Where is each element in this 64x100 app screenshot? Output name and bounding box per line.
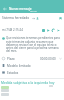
staticText: Plazo xyxy=(7,57,15,61)
staticText: 00:00-00:00 xyxy=(40,57,56,61)
button[interactable]: Plazo xyxy=(0,55,64,62)
staticText: Nuevo mensaje xyxy=(9,7,32,11)
button[interactable]: Label xyxy=(58,16,63,21)
staticText: Que revisiones tenemos pendientes para e… xyxy=(6,36,61,52)
button[interactable]: Modelo limitado xyxy=(0,62,64,69)
button[interactable]: Archive xyxy=(41,28,46,33)
button[interactable]: Call xyxy=(51,28,56,33)
staticText: Medida subjetiva a la izquierda hoy xyxy=(1,81,55,85)
button[interactable]: Back xyxy=(0,4,9,13)
staticText: mi 7/48 2:15:24 xyxy=(2,28,23,32)
staticText: grupo xyxy=(30,9,37,12)
staticText: Sistema heredado xyxy=(2,16,30,20)
button[interactable]: Forward xyxy=(46,28,51,33)
staticText: Estados xyxy=(7,71,19,75)
staticText: Modelo limitado xyxy=(7,64,31,68)
button[interactable]: Send xyxy=(56,28,61,33)
button[interactable]: Estados xyxy=(0,69,64,76)
